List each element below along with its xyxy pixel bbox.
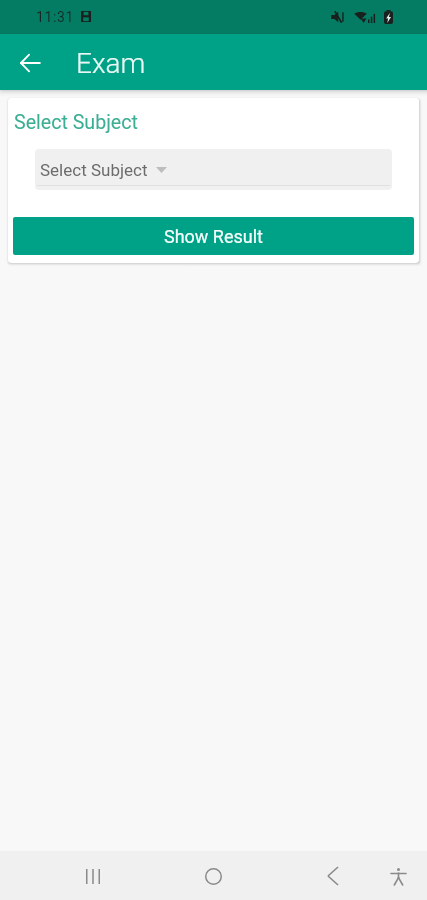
staticText: Exam [76,47,146,80]
button[interactable]: Accessibility [374,852,422,900]
staticText: Select Subject [14,111,138,134]
staticText: Select Subject [40,160,148,180]
button[interactable]: Recent apps [69,852,117,900]
staticText: 11:31 [36,9,74,25]
button[interactable]: Select Subject [35,149,392,190]
button[interactable]: Back [8,41,52,85]
button[interactable]: Show Result [13,217,414,255]
staticText: Show Result [164,226,263,247]
button[interactable]: Back [309,852,357,900]
button[interactable]: Home [189,852,237,900]
